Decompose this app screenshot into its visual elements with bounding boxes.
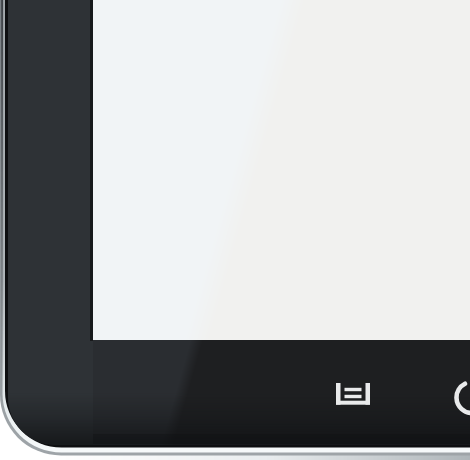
button[interactable] — [330, 377, 376, 411]
button[interactable] — [452, 376, 470, 420]
